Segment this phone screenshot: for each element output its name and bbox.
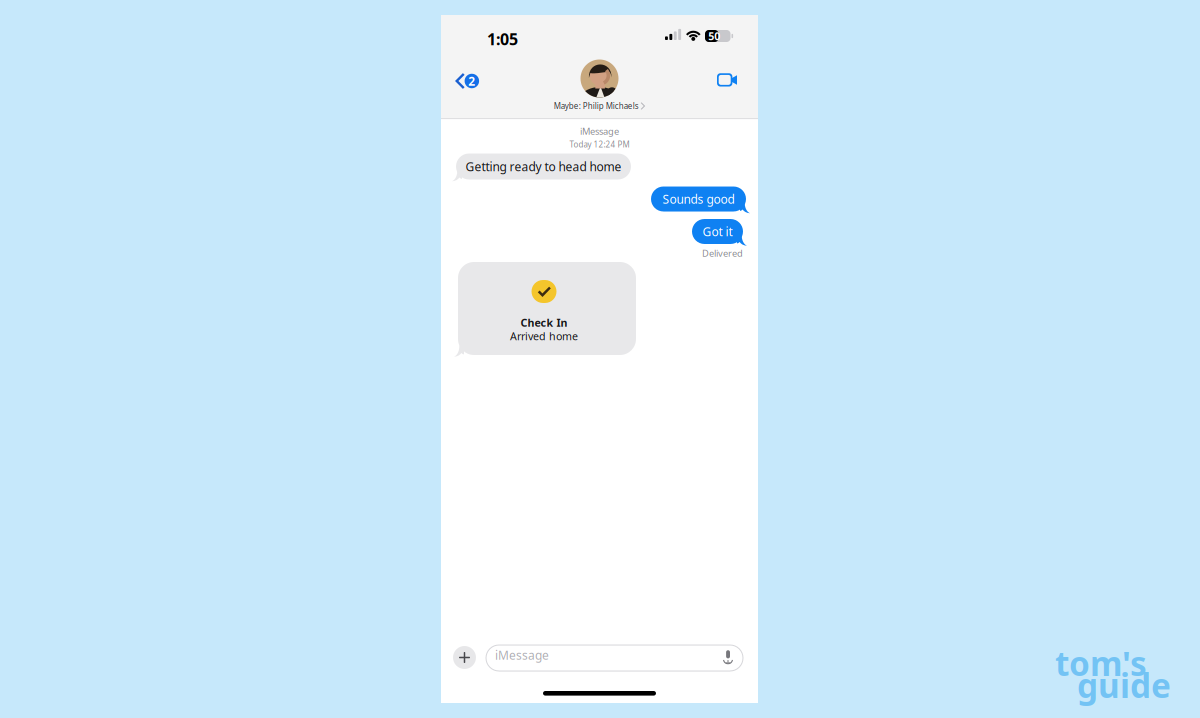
- staticText: Today 12:24 PM: [569, 139, 629, 150]
- staticText: guide: [1077, 663, 1171, 707]
- button[interactable]: FaceTime video call: [717, 73, 747, 87]
- staticText: Got it: [702, 223, 732, 239]
- staticText: Maybe: Philip Michaels: [554, 101, 639, 111]
- staticText: iMessage: [495, 647, 549, 663]
- button[interactable]: Maybe: Philip Michaels: [499, 59, 699, 111]
- staticText: tom's: [1055, 641, 1147, 685]
- button[interactable]: iMessage: [486, 645, 743, 671]
- staticText: 50: [708, 29, 720, 43]
- staticText: Arrived home: [510, 329, 578, 343]
- staticText: 1:05: [487, 28, 518, 50]
- staticText: Delivered: [702, 247, 743, 259]
- staticText: Check In: [520, 315, 567, 330]
- staticText: Sounds good: [662, 191, 734, 207]
- staticText: Getting ready to head home: [465, 158, 621, 174]
- button[interactable]: Add attachment: [453, 646, 476, 669]
- button[interactable]: Back to Messages: [455, 71, 495, 91]
- staticText: iMessage: [580, 125, 619, 137]
- staticText: 2: [468, 73, 475, 89]
